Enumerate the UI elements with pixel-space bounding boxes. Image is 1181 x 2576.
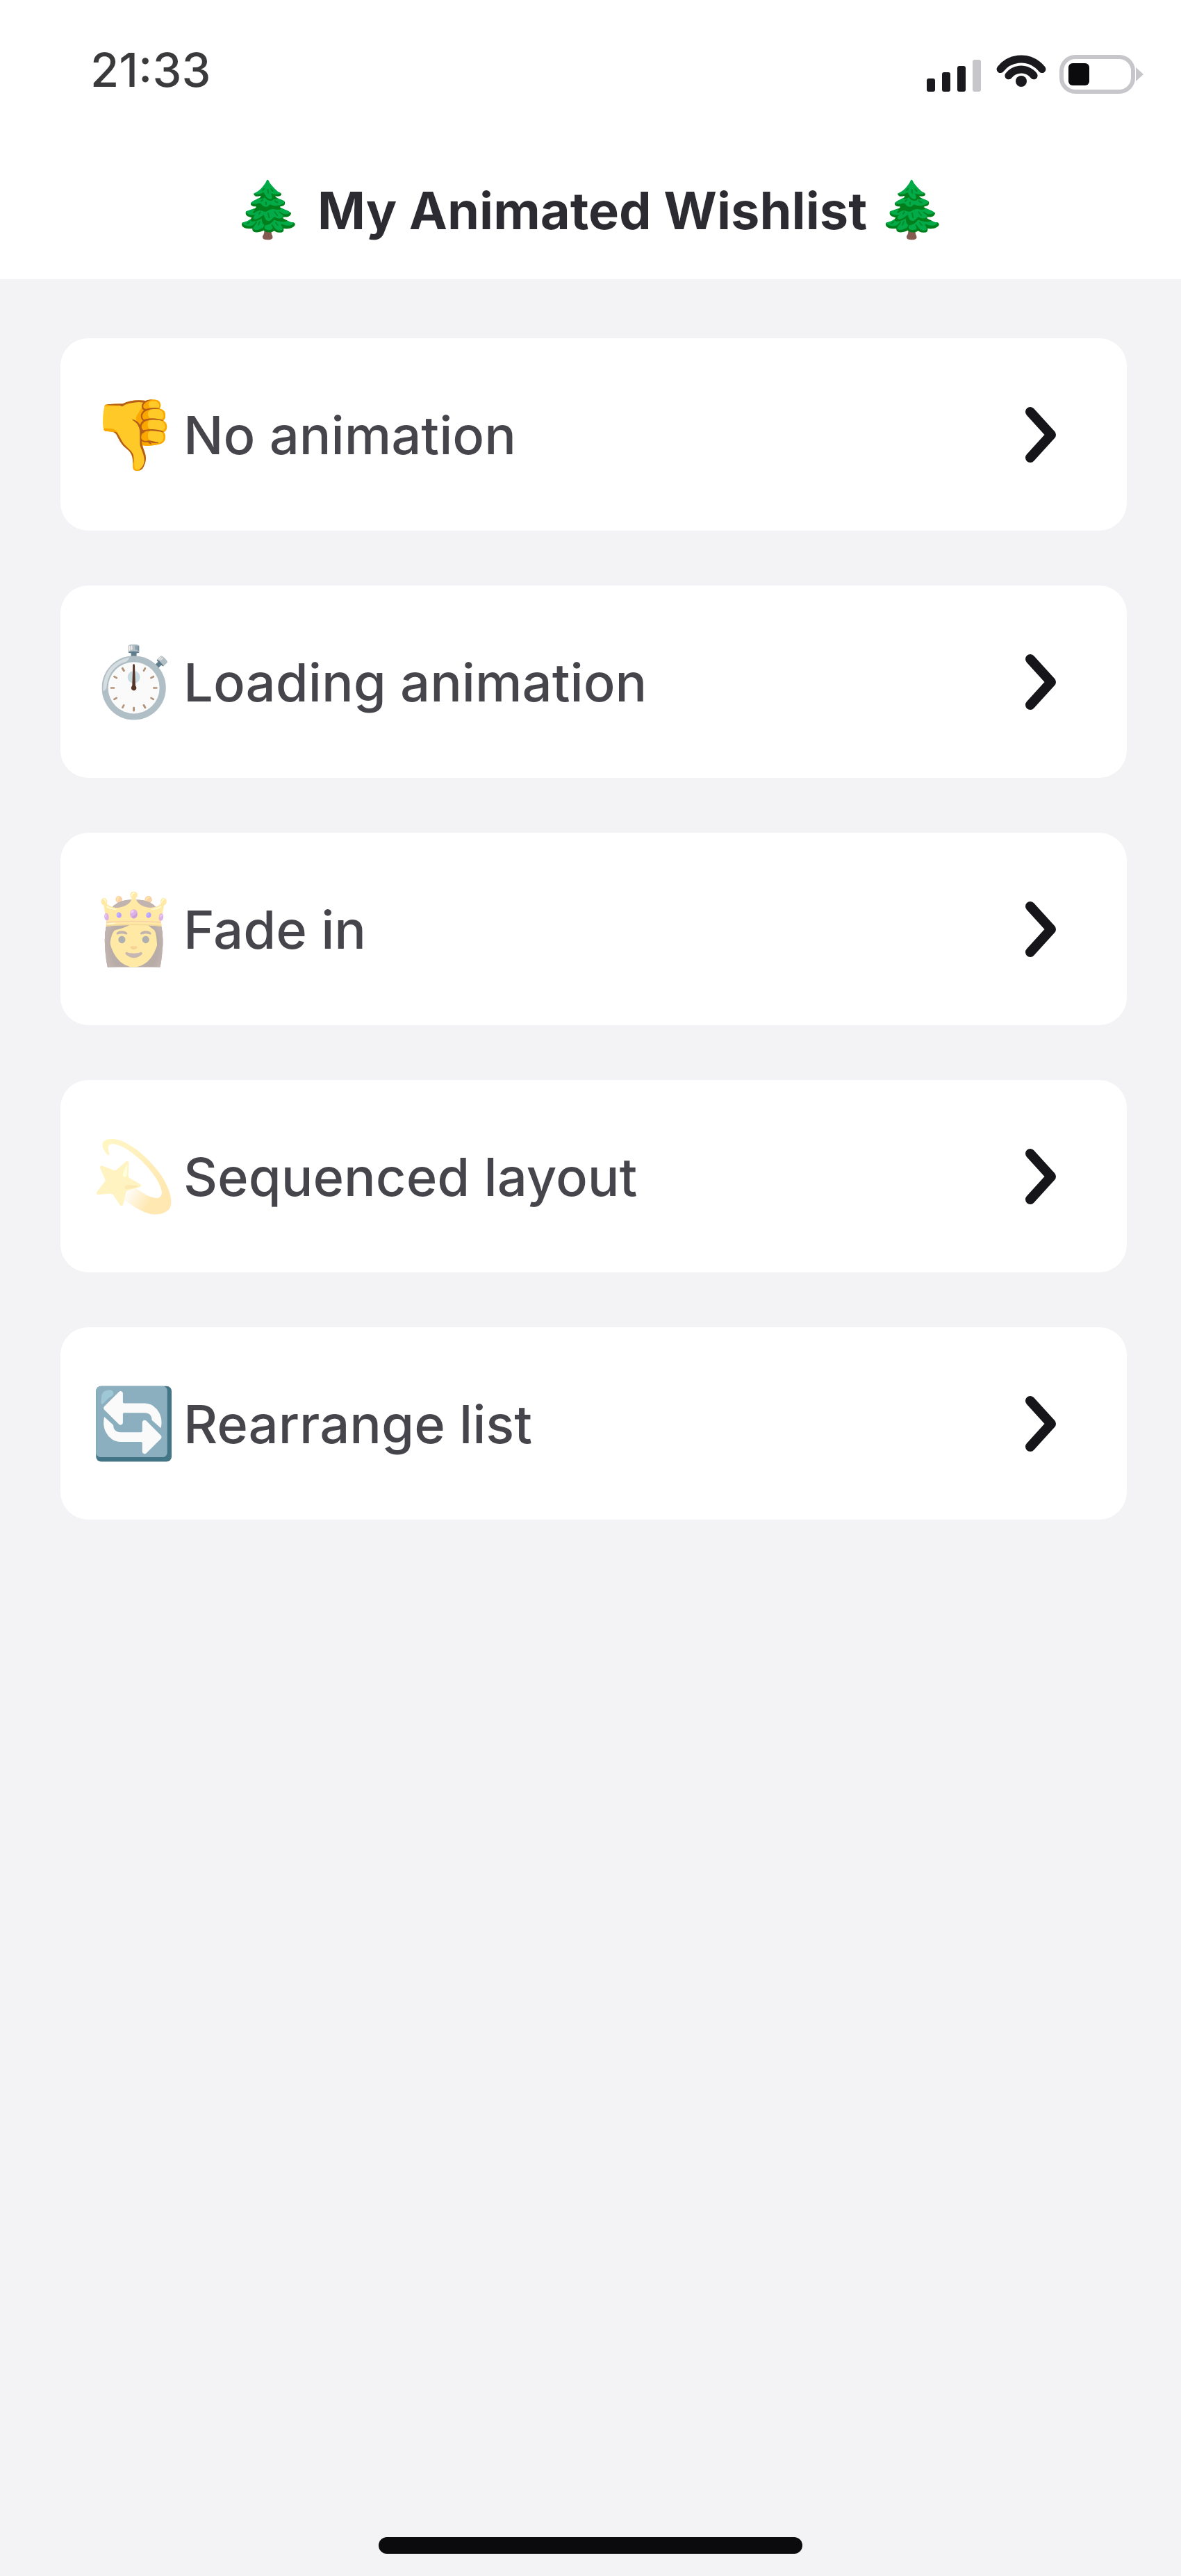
other: Open — [1025, 1149, 1056, 1204]
button[interactable]: 👸 — [60, 833, 1127, 1025]
staticText: 👸 — [91, 889, 177, 970]
staticText: 🔄 — [91, 1383, 177, 1464]
staticText: Sequenced layout — [183, 1145, 638, 1208]
button[interactable]: ⏱️ — [60, 585, 1127, 778]
staticText: ⏱️ — [91, 642, 177, 722]
button[interactable]: 💫 — [60, 1080, 1127, 1272]
other: Signal, Wi-Fi and battery status — [927, 42, 1142, 90]
staticText: 👎 — [91, 394, 177, 475]
button[interactable]: 🔄 — [60, 1327, 1127, 1520]
staticText: 21:33 — [90, 42, 211, 98]
staticText: Fade in — [183, 897, 367, 961]
staticText: 🌲 — [878, 178, 947, 242]
button[interactable]: 👎 — [60, 338, 1127, 531]
other: Open — [1025, 654, 1056, 710]
staticText: No animation — [183, 403, 516, 467]
staticText: Rearrange list — [183, 1392, 533, 1456]
staticText: My Animated Wishlist — [317, 179, 868, 242]
other: Open — [1025, 1396, 1056, 1452]
staticText: Loading animation — [183, 650, 647, 714]
staticText: 💫 — [91, 1136, 177, 1217]
staticText: 🌲 — [234, 178, 303, 242]
other: Open — [1025, 901, 1056, 957]
other: Open — [1025, 407, 1056, 463]
